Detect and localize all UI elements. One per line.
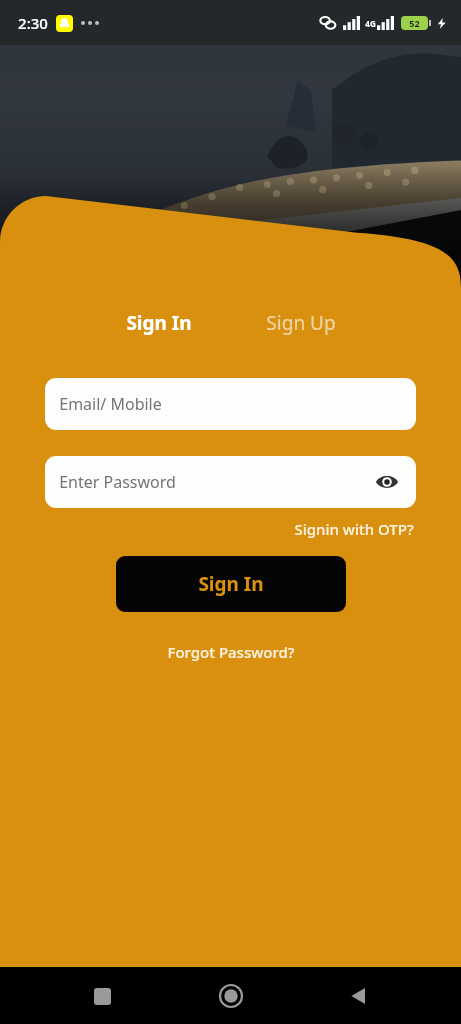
staticText: Sign In	[126, 310, 192, 336]
button[interactable]: Recent apps	[76, 970, 128, 1022]
staticText: Email/ Mobile	[59, 393, 162, 415]
staticText: 2:30	[18, 13, 48, 33]
staticText: Sign In	[198, 571, 264, 597]
button[interactable]: Signin with OTP?	[292, 516, 416, 542]
button[interactable]: Back	[333, 970, 385, 1022]
button[interactable]: Email/ Mobile	[45, 378, 416, 430]
staticText: Signin with OTP?	[294, 519, 414, 539]
staticText: 4G	[365, 18, 376, 29]
staticText: 52	[409, 17, 420, 29]
staticText: Enter Password	[59, 471, 176, 493]
staticText: Forgot Password?	[167, 642, 295, 662]
staticText: Sign Up	[266, 310, 336, 336]
button[interactable]: Sign In	[120, 306, 198, 340]
button[interactable]: Forgot Password?	[161, 638, 301, 666]
button[interactable]: Sign Up	[260, 306, 342, 340]
button[interactable]: Show password	[370, 465, 404, 499]
button[interactable]: Home	[205, 970, 257, 1022]
button[interactable]: Enter Password	[45, 456, 416, 508]
button[interactable]: Sign In	[116, 556, 346, 612]
